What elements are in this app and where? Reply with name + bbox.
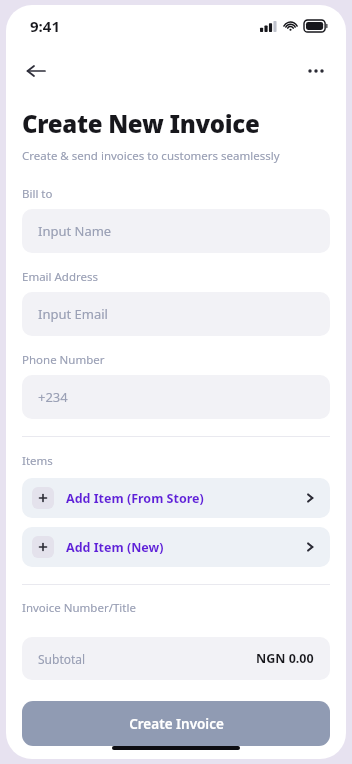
staticText: Create Invoice [129, 715, 224, 733]
staticText: Create New Invoice [22, 107, 260, 140]
button[interactable]: Back [16, 51, 56, 91]
staticText: Input Email [38, 305, 108, 323]
staticText: Invoice Number/Title [22, 600, 136, 616]
button[interactable]: More options [296, 51, 336, 91]
button[interactable]: Add Item (New) [22, 527, 330, 567]
staticText: Items [22, 453, 53, 469]
staticText: Add Item (From Store) [66, 490, 204, 507]
button[interactable]: Create Invoice [22, 701, 330, 746]
button[interactable]: +234 [22, 375, 330, 419]
staticText: Bill to [22, 186, 53, 202]
staticText: NGN 0.00 [256, 650, 314, 667]
staticText: Input Name [38, 222, 112, 240]
staticText: Phone Number [22, 352, 105, 368]
button[interactable]: Input Name [22, 209, 330, 253]
staticText: +234 [38, 388, 68, 406]
staticText: Subtotal [38, 651, 86, 667]
staticText: 9:41 [30, 16, 60, 36]
staticText: Add Item (New) [66, 539, 164, 556]
staticText: Email Address [22, 269, 99, 285]
button[interactable]: Input Email [22, 292, 330, 336]
staticText: Create & send invoices to customers seam… [22, 148, 280, 164]
button[interactable]: Add Item (From Store) [22, 478, 330, 518]
